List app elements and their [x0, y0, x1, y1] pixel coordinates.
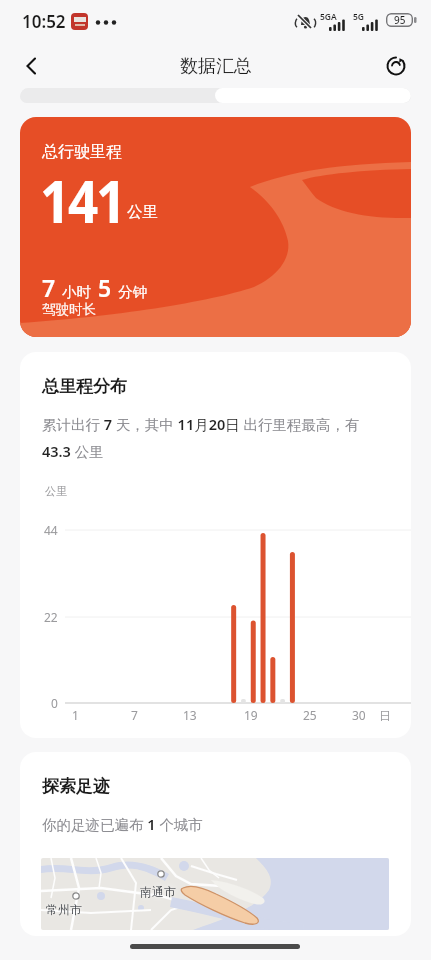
staticText: 公里	[45, 484, 67, 498]
staticText: 44	[44, 522, 58, 538]
button[interactable]	[20, 88, 411, 103]
staticText: 19	[244, 707, 258, 723]
staticText: 141	[40, 159, 124, 241]
staticText: 探索足迹	[42, 776, 110, 797]
staticText: 22	[44, 609, 58, 625]
staticText: 数据汇总	[180, 55, 252, 78]
staticText: 30	[352, 707, 366, 723]
staticText: 日	[379, 708, 391, 723]
staticText: 南通市	[140, 884, 176, 899]
button[interactable]: 南通市	[41, 858, 389, 930]
button[interactable]: 总行驶里程	[20, 117, 411, 337]
staticText: 10:52	[22, 10, 66, 33]
staticText: 25	[303, 707, 317, 723]
staticText: 0	[51, 695, 58, 711]
button[interactable]: 总里程分布	[20, 352, 411, 738]
staticText: 1	[72, 707, 79, 723]
staticText: 5	[98, 272, 112, 303]
staticText: 13	[183, 707, 197, 723]
staticText: 总里程分布	[42, 376, 127, 397]
staticText: 分钟	[118, 283, 147, 301]
staticText: 43.3 公里	[42, 441, 104, 461]
button[interactable]	[14, 48, 50, 84]
button[interactable]	[378, 48, 414, 84]
staticText: 7	[131, 707, 138, 723]
staticText: 5GA	[320, 11, 337, 23]
staticText: 95	[394, 13, 406, 27]
staticText: 小时	[62, 283, 91, 301]
staticText: 5G	[353, 11, 365, 23]
staticText: 驾驶时长	[42, 301, 96, 318]
staticText: 7	[42, 272, 56, 303]
staticText: 常州市	[46, 902, 82, 917]
staticText: 你的足迹已遍布 1 个城市	[42, 814, 203, 834]
staticText: 公里	[127, 202, 158, 222]
staticText: 总行驶里程	[42, 142, 122, 162]
staticText: 累计出行 7 天，其中 11月20日 出行里程最高，有	[42, 414, 360, 434]
